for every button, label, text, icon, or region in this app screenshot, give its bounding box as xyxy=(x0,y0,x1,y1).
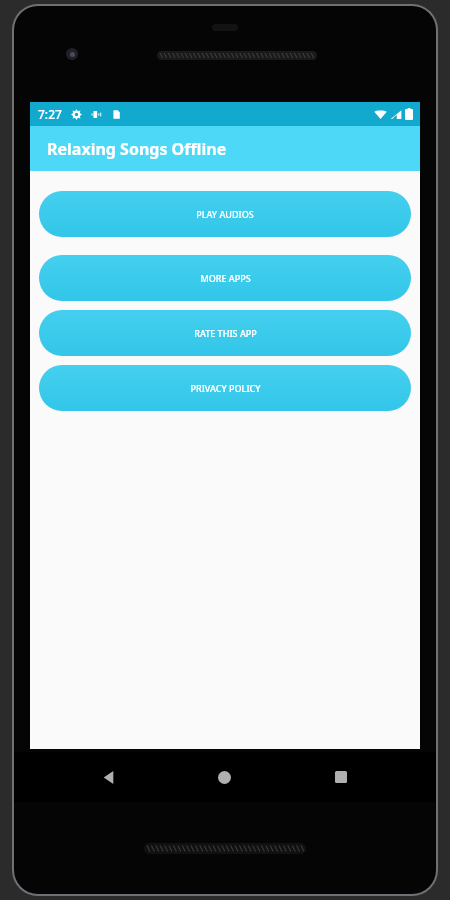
staticText: RATE THIS APP xyxy=(194,327,257,339)
staticText: PRIVACY POLICY xyxy=(190,382,261,394)
button[interactable]: Recent apps xyxy=(319,755,363,799)
staticText: Relaxing Songs Offline xyxy=(47,138,227,160)
button[interactable]: Back xyxy=(86,755,130,799)
staticText: MORE APPS xyxy=(200,272,251,284)
button[interactable]: Home xyxy=(202,755,246,799)
staticText: PLAY AUDIOS xyxy=(196,208,254,220)
button[interactable]: RATE THIS APP xyxy=(39,310,411,356)
staticText: 7:27 xyxy=(38,106,62,122)
button[interactable]: MORE APPS xyxy=(39,255,411,301)
button[interactable]: PLAY AUDIOS xyxy=(39,191,411,237)
button[interactable]: PRIVACY POLICY xyxy=(39,365,411,411)
